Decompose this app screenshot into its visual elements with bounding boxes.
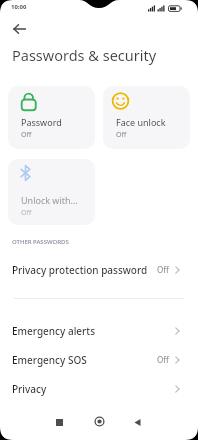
- button[interactable]: Privacy: [0, 374, 198, 403]
- staticText: Passwords & security: [12, 45, 157, 65]
- staticText: Emergency SOS: [12, 353, 87, 367]
- staticText: Off: [157, 354, 169, 365]
- staticText: Off: [21, 130, 32, 140]
- staticText: Privacy: [12, 382, 47, 396]
- staticText: Off: [157, 264, 169, 275]
- button[interactable]: [13, 24, 29, 34]
- staticText: Privacy protection password: [12, 263, 148, 277]
- staticText: Face unlock: [116, 116, 166, 128]
- button[interactable]: Unlock with...: [8, 159, 95, 225]
- button[interactable]: Privacy protection password: [0, 255, 198, 284]
- button[interactable]: [52, 415, 66, 429]
- staticText: Off: [21, 208, 32, 218]
- staticText: OTHER PASSWORDS: [12, 238, 69, 246]
- button[interactable]: [92, 414, 107, 429]
- button[interactable]: Emergency alerts: [0, 316, 198, 345]
- staticText: Off: [116, 130, 127, 140]
- button[interactable]: Emergency SOS: [0, 345, 198, 374]
- button[interactable]: [130, 415, 144, 429]
- staticText: 10:00: [11, 3, 27, 11]
- staticText: Emergency alerts: [12, 324, 95, 338]
- staticText: Password: [21, 116, 62, 128]
- button[interactable]: Face unlock: [103, 86, 190, 149]
- button[interactable]: Password: [8, 86, 95, 149]
- staticText: Unlock with...: [21, 194, 78, 206]
